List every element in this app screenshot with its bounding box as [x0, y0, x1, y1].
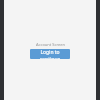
staticText: Account Screen	[36, 42, 65, 47]
staticText: Login to continue	[30, 49, 70, 59]
button[interactable]: Login to continue	[30, 49, 70, 59]
